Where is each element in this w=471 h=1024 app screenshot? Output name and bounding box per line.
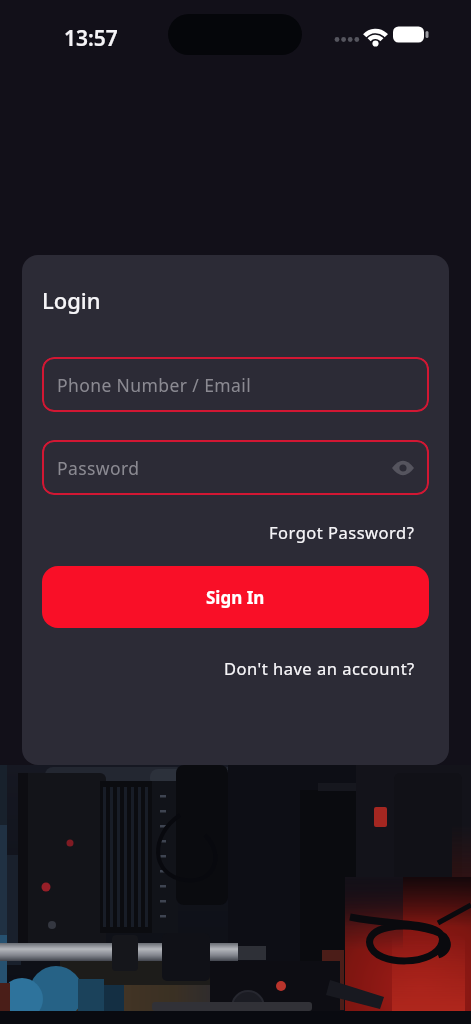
- staticText: Password: [57, 456, 140, 480]
- staticText: Login: [42, 285, 101, 315]
- button[interactable]: Don't have an account?: [224, 657, 415, 679]
- staticText: 13:57: [64, 24, 118, 53]
- staticText: Sign In: [206, 586, 265, 609]
- button[interactable]: Forgot Password?: [269, 521, 415, 543]
- button[interactable]: Phone Number / Email: [42, 357, 429, 412]
- staticText: Phone Number / Email: [57, 373, 252, 397]
- button[interactable]: Password: [42, 440, 429, 495]
- button[interactable]: Sign In: [42, 566, 429, 628]
